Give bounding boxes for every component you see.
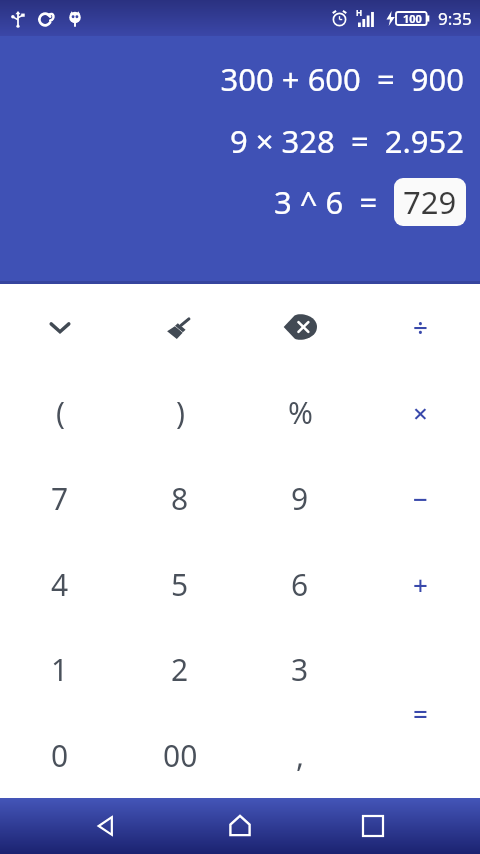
- staticText: 2: [171, 649, 189, 690]
- staticText: %: [288, 392, 313, 433]
- button[interactable]: ,: [240, 712, 360, 798]
- staticText: 4: [51, 564, 69, 605]
- button[interactable]: 5: [120, 541, 240, 627]
- button[interactable]: 3: [240, 627, 360, 712]
- button[interactable]: Back: [81, 800, 133, 852]
- button[interactable]: 2: [120, 627, 240, 712]
- staticText: 6: [291, 564, 309, 605]
- staticText: ÷: [413, 309, 428, 344]
- staticText: ,: [296, 735, 305, 776]
- staticText: =: [413, 695, 428, 730]
- staticText: (: [56, 392, 65, 433]
- button[interactable]: ): [120, 369, 240, 455]
- other: Collapse history: [38, 305, 82, 349]
- staticText: 300 + 600 = 900: [220, 58, 464, 100]
- staticText: 0: [51, 735, 69, 776]
- staticText: 9: [291, 478, 309, 519]
- button[interactable]: −: [360, 455, 480, 541]
- button[interactable]: 9: [240, 455, 360, 541]
- button[interactable]: Backspace: [240, 284, 360, 369]
- staticText: 100: [403, 11, 422, 26]
- staticText: H: [356, 7, 363, 18]
- staticText: 3: [291, 649, 309, 690]
- button[interactable]: 4: [0, 541, 120, 627]
- button[interactable]: 6: [240, 541, 360, 627]
- other: Clear all: [158, 305, 202, 349]
- staticText: 729: [403, 181, 457, 223]
- button[interactable]: 7: [0, 455, 120, 541]
- button[interactable]: (: [0, 369, 120, 455]
- button[interactable]: +: [360, 541, 480, 627]
- button[interactable]: %: [240, 369, 360, 455]
- staticText: 3 ^ 6 =: [274, 181, 394, 223]
- staticText: 9:35: [438, 7, 472, 30]
- button[interactable]: 8: [120, 455, 240, 541]
- button[interactable]: 1: [0, 627, 120, 712]
- staticText: 8: [171, 478, 189, 519]
- button[interactable]: Collapse history: [0, 284, 120, 369]
- button[interactable]: Home: [214, 800, 266, 852]
- staticText: −: [413, 481, 428, 516]
- button[interactable]: ÷: [360, 284, 480, 369]
- button[interactable]: ×: [360, 369, 480, 455]
- staticText: 7: [51, 478, 69, 519]
- other: Backspace: [277, 304, 323, 350]
- button[interactable]: 0: [0, 712, 120, 798]
- staticText: 1: [51, 649, 69, 690]
- staticText: ×: [413, 395, 428, 430]
- staticText: +: [413, 567, 428, 602]
- button[interactable]: Recents: [347, 800, 399, 852]
- button[interactable]: Clear all: [120, 284, 240, 369]
- button[interactable]: =: [360, 627, 480, 798]
- staticText: 5: [171, 564, 189, 605]
- staticText: ): [176, 392, 185, 433]
- button[interactable]: 00: [120, 712, 240, 798]
- staticText: 00: [163, 735, 198, 776]
- staticText: 9 × 328 = 2.952: [230, 120, 464, 162]
